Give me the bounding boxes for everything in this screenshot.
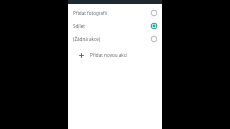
button[interactable]: Přidat fotografii xyxy=(68,6,162,19)
button[interactable]: Přidat novou akci xyxy=(68,49,162,61)
staticText: Sdílet xyxy=(73,23,150,29)
button[interactable]: Sdílet xyxy=(68,19,162,32)
staticText: Přidat fotografii xyxy=(73,10,150,16)
staticText: Přidat novou akci xyxy=(90,52,128,58)
other: Přidat novou akci xyxy=(78,52,85,59)
staticText: (Žádná akce) xyxy=(73,36,150,42)
button[interactable]: (Žádná akce) xyxy=(68,32,162,45)
